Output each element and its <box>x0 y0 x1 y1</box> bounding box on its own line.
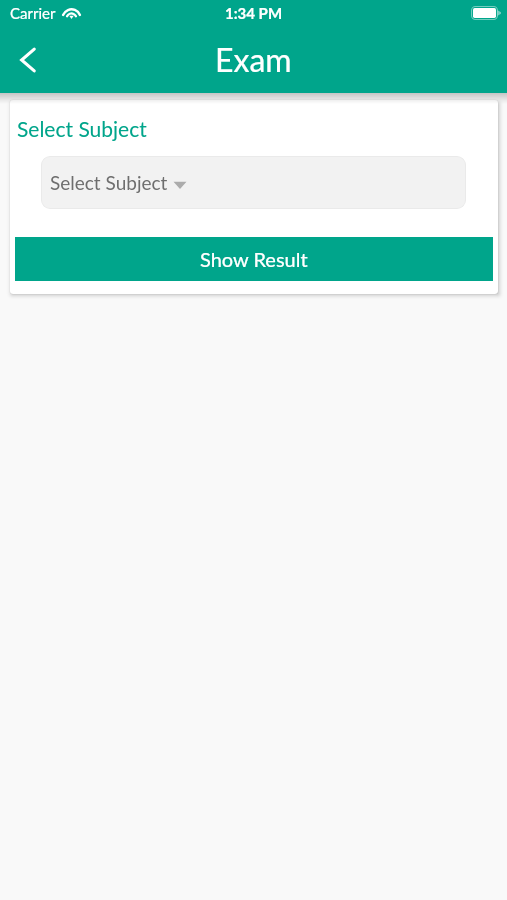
staticText: Exam <box>215 40 292 78</box>
staticText: 1:34 PM <box>225 4 283 22</box>
button[interactable]: Show Result <box>15 237 493 281</box>
staticText: Select Subject <box>17 116 147 141</box>
staticText: Select Subject <box>50 171 168 194</box>
button[interactable]: Back <box>9 41 47 79</box>
staticText: Show Result <box>200 247 308 271</box>
staticText: Carrier <box>10 4 56 22</box>
button[interactable]: Select Subject <box>41 156 466 209</box>
